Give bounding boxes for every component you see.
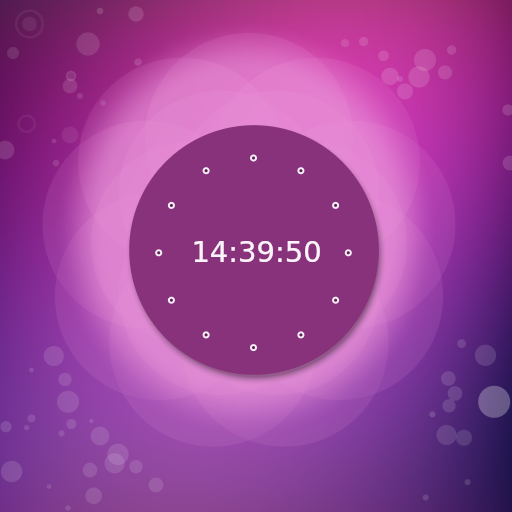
button[interactable]: Watch face, time 14:39:50 xyxy=(0,0,512,512)
staticText: 14:39:50 xyxy=(191,235,322,269)
